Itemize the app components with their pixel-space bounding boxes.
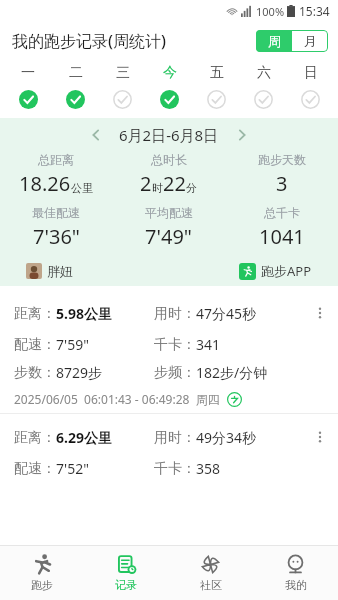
staticText: 配速：	[14, 460, 56, 478]
staticText: 距离：	[14, 305, 56, 323]
staticText: 用时：	[154, 429, 196, 447]
staticText: 胖妞	[47, 263, 73, 279]
staticText: 100%	[256, 4, 285, 19]
staticText: 5.98公里	[56, 304, 112, 323]
staticText: 358	[196, 459, 221, 478]
staticText: 15:34	[299, 3, 330, 19]
staticText: 最佳配速	[32, 205, 80, 220]
staticText: 六	[257, 64, 271, 82]
staticText: 182步/分钟	[196, 363, 268, 382]
staticText: 分	[186, 181, 197, 195]
staticText: 配速：	[14, 336, 56, 354]
staticText: 五	[210, 64, 224, 82]
staticText: 跑步天数	[258, 152, 306, 167]
staticText: 总千卡	[264, 205, 300, 220]
staticText: 平均配速	[145, 205, 193, 220]
staticText: 公里	[71, 181, 93, 195]
staticText: 7'49"	[145, 223, 192, 250]
staticText: 7'59"	[56, 335, 89, 354]
staticText: 月	[304, 33, 317, 49]
staticText: 跑步APP	[261, 262, 312, 280]
button[interactable]: 距离：	[0, 414, 338, 484]
staticText: 跑步	[31, 578, 53, 592]
button[interactable]: 更多	[302, 424, 338, 450]
button[interactable]: 胖妞	[26, 263, 73, 279]
staticText: 距离：	[14, 429, 56, 447]
staticText: 49分34秒	[196, 428, 257, 447]
staticText: 记录	[115, 578, 137, 592]
staticText: 7'52"	[56, 459, 89, 478]
staticText: 3	[276, 170, 288, 197]
staticText: 6.29公里	[56, 428, 112, 447]
button[interactable]: 距离：	[0, 292, 338, 413]
staticText: 步数：	[14, 364, 56, 382]
staticText: 6月2日-6月8日	[119, 125, 219, 145]
staticText: 总距离	[38, 152, 74, 167]
staticText: 8729步	[56, 363, 103, 382]
staticText: 7'36"	[33, 223, 80, 250]
button[interactable]: 下一周	[229, 122, 255, 148]
staticText: 时	[152, 181, 163, 195]
button[interactable]: 上一周	[83, 122, 109, 148]
staticText: 三	[116, 64, 130, 82]
staticText: 社区	[200, 578, 222, 592]
button[interactable]: 跑步APP	[239, 262, 312, 280]
staticText: 22	[163, 170, 186, 197]
staticText: 18.26	[19, 170, 71, 197]
staticText: 我的	[285, 578, 307, 592]
staticText: 今	[163, 64, 177, 82]
button[interactable]: 月	[292, 30, 328, 52]
staticText: 我的跑步记录(周统计)	[12, 30, 166, 52]
button[interactable]: 周	[256, 30, 292, 52]
button[interactable]: 更多	[302, 300, 338, 326]
button[interactable]: 我的	[253, 546, 338, 600]
staticText: 千卡：	[154, 460, 196, 478]
staticText: 2	[140, 170, 152, 197]
staticText: 47分45秒	[196, 304, 257, 323]
button[interactable]: 记录	[84, 546, 168, 600]
staticText: 341	[196, 335, 221, 354]
staticText: 用时：	[154, 305, 196, 323]
staticText: 日	[304, 64, 318, 82]
button[interactable]: 社区	[168, 546, 253, 600]
staticText: 一	[21, 64, 35, 82]
staticText: 2025/06/05 06:01:43 - 06:49:28 周四	[14, 391, 220, 407]
staticText: 1041	[259, 223, 305, 250]
staticText: 千卡：	[154, 336, 196, 354]
staticText: 步频：	[154, 364, 196, 382]
staticText: 二	[69, 64, 83, 82]
staticText: 周	[268, 33, 281, 49]
button[interactable]: 跑步	[0, 546, 84, 600]
staticText: 总时长	[151, 152, 187, 167]
